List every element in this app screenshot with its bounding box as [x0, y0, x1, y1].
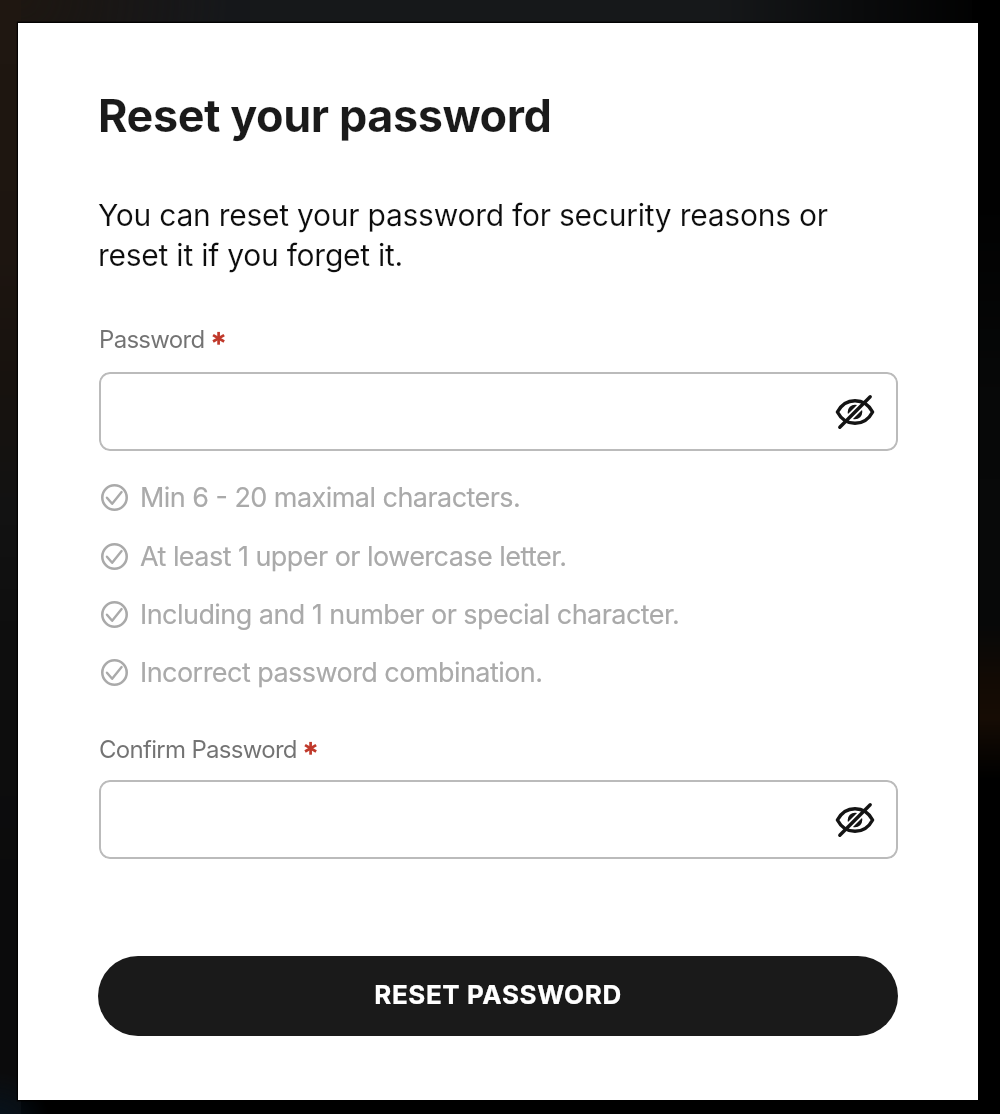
staticText: Password [99, 325, 205, 354]
staticText: Min 6 - 20 maximal characters. [140, 481, 521, 514]
button[interactable]: Show password [99, 780, 898, 859]
button[interactable]: Show password [833, 798, 877, 842]
staticText: You can reset your password for security… [98, 197, 838, 273]
button[interactable]: Show password [99, 372, 898, 451]
staticText: Confirm Password [99, 735, 297, 764]
staticText: Reset your password [98, 88, 552, 142]
staticText: RESET PASSWORD [374, 979, 622, 1010]
staticText: Including and 1 number or special charac… [140, 598, 680, 631]
staticText: At least 1 upper or lowercase letter. [140, 540, 567, 573]
button[interactable]: RESET PASSWORD [98, 956, 898, 1036]
button[interactable]: Show password [833, 390, 877, 434]
staticText: Incorrect password combination. [140, 656, 543, 689]
